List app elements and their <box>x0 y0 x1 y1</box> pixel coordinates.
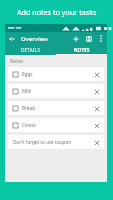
staticText: Bread <box>22 105 92 111</box>
button[interactable]: Delete Eggs <box>92 70 101 79</box>
button[interactable]: Save <box>82 32 95 45</box>
button[interactable]: Toggle Bread <box>8 101 104 115</box>
button[interactable]: Don't forget to use coupon <box>8 135 104 149</box>
staticText: Add notes to your tasks <box>17 7 97 17</box>
button[interactable]: Toggle Eggs <box>8 67 104 81</box>
button[interactable]: NOTES <box>56 45 107 54</box>
staticText: Don't forget to use coupon <box>13 139 92 145</box>
button[interactable]: Delete Cereal <box>92 121 101 130</box>
staticText: Milk <box>22 88 92 94</box>
staticText: NOTES <box>74 47 90 53</box>
button[interactable]: Back <box>5 32 18 45</box>
button[interactable]: Delete Bread <box>92 104 101 113</box>
staticText: Notes <box>10 58 24 64</box>
button[interactable]: Toggle Eggs <box>11 70 20 79</box>
button[interactable]: Delete Milk <box>92 87 101 96</box>
button[interactable]: Toggle Cereal <box>8 118 104 132</box>
button[interactable]: Delete Don't forget to use coupon <box>92 138 101 147</box>
staticText: Overview <box>21 35 69 43</box>
button[interactable]: Toggle Bread <box>11 104 20 113</box>
button[interactable]: Add note <box>69 32 82 45</box>
button[interactable]: DETAILS <box>5 45 56 54</box>
button[interactable]: Toggle Milk <box>8 84 104 98</box>
staticText: DETAILS <box>21 47 41 53</box>
staticText: Eggs <box>22 71 92 77</box>
button[interactable]: Toggle Milk <box>11 87 20 96</box>
button[interactable]: More options <box>95 33 106 44</box>
button[interactable]: Toggle Cereal <box>11 121 20 130</box>
staticText: Cereal <box>22 122 92 128</box>
